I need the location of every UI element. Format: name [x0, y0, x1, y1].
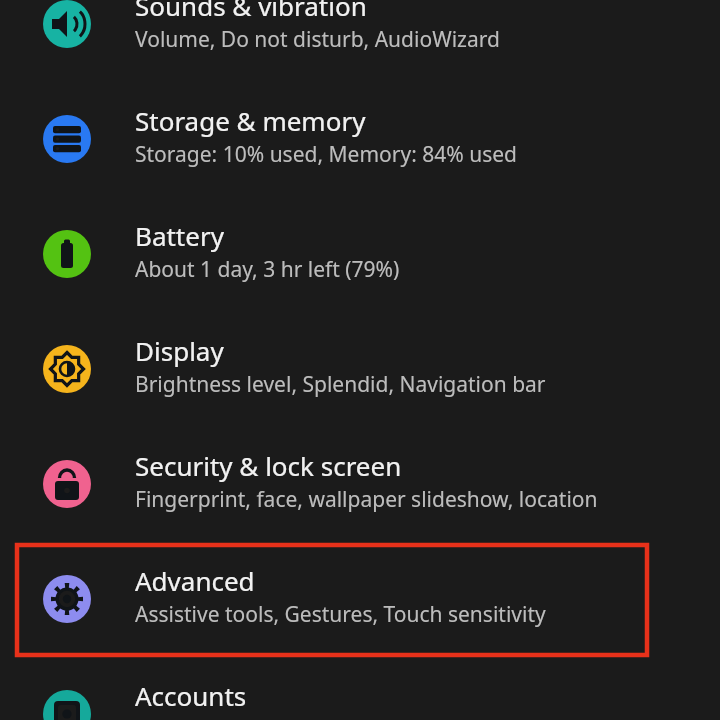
other: Battery: [43, 230, 91, 278]
staticText: About 1 day, 3 hr left (79%): [135, 255, 400, 284]
staticText: Assistive tools, Gestures, Touch sensiti…: [135, 600, 546, 629]
button[interactable]: Advanced: [0, 542, 720, 656]
staticText: Sounds & vibration: [135, 0, 367, 23]
button[interactable]: Storage & memory: [0, 82, 720, 196]
staticText: Advanced: [135, 563, 255, 598]
button[interactable]: Accounts: [0, 657, 720, 720]
staticText: Fingerprint, face, wallpaper slideshow, …: [135, 485, 598, 514]
button[interactable]: Battery: [0, 197, 720, 311]
other: Storage & memory: [43, 115, 91, 163]
other: Accounts: [43, 690, 91, 720]
staticText: Display: [135, 333, 224, 368]
staticText: Storage: 10% used, Memory: 84% used: [135, 140, 517, 169]
button[interactable]: Security & lock screen: [0, 427, 720, 541]
other: Security & lock screen: [43, 460, 91, 508]
staticText: Storage & memory: [135, 103, 366, 138]
other: Display: [43, 345, 91, 393]
button[interactable]: Sounds & vibration: [0, 0, 720, 81]
staticText: Accounts: [135, 678, 247, 713]
staticText: Volume, Do not disturb, AudioWizard: [135, 25, 500, 54]
other: Sounds & vibration: [43, 0, 91, 48]
staticText: Battery: [135, 218, 224, 253]
button[interactable]: Display: [0, 312, 720, 426]
staticText: Brightness level, Splendid, Navigation b…: [135, 370, 546, 399]
staticText: Security & lock screen: [135, 448, 402, 483]
other: Advanced: [43, 575, 91, 623]
